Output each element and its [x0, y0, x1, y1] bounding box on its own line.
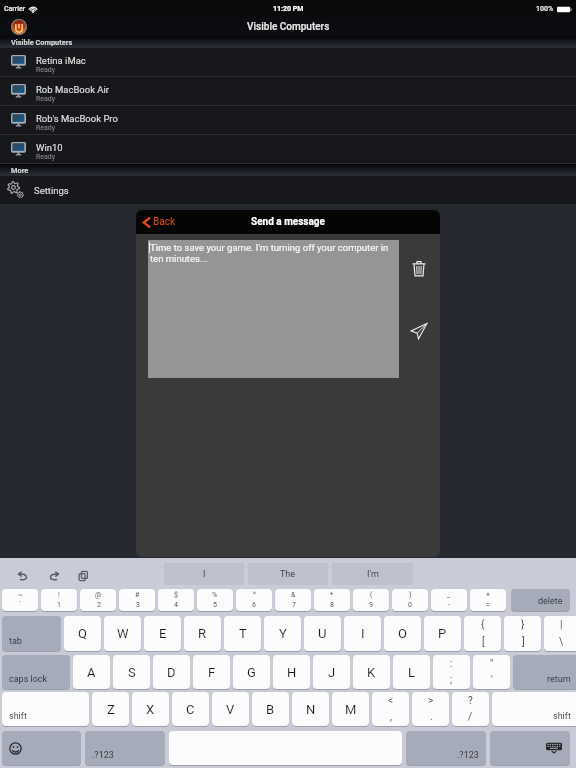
button[interactable]: |	[544, 616, 576, 651]
button[interactable]: F	[193, 655, 230, 689]
staticText: 6	[252, 601, 256, 609]
button[interactable]: {	[464, 616, 501, 651]
staticText: 2	[97, 601, 101, 609]
button[interactable]: "	[473, 655, 510, 689]
button[interactable]: X	[132, 692, 169, 726]
button[interactable]: +	[470, 589, 506, 611]
staticText: "	[490, 658, 494, 670]
button[interactable]: N	[292, 692, 329, 726]
button[interactable]: D	[153, 655, 190, 689]
button[interactable]: B	[252, 692, 289, 726]
button[interactable]: .?123	[406, 731, 486, 765]
staticText: Carrier	[4, 5, 26, 13]
button[interactable]: :	[433, 655, 470, 689]
button[interactable]: L	[393, 655, 430, 689]
button[interactable]: return	[513, 655, 576, 689]
button[interactable]: )	[392, 589, 428, 611]
button[interactable]: K	[353, 655, 390, 689]
staticText: .?123	[92, 750, 114, 761]
staticText: |	[560, 619, 563, 631]
staticText: /	[468, 711, 473, 723]
button[interactable]: Win10	[0, 135, 576, 163]
button[interactable]: Undo	[11, 565, 33, 587]
button[interactable]: ?	[452, 692, 489, 726]
button[interactable]: C	[172, 692, 209, 726]
button[interactable]: Send	[410, 322, 428, 340]
button[interactable]: _	[431, 589, 467, 611]
staticText: ]	[522, 636, 525, 648]
button[interactable]: %	[197, 589, 233, 611]
staticText: L	[408, 665, 416, 680]
button[interactable]: delete	[511, 589, 570, 611]
button[interactable]: #	[119, 589, 155, 611]
button[interactable]: U	[304, 616, 341, 651]
staticText: *	[330, 591, 334, 599]
button[interactable]: Time to save your game. I'm turning off …	[148, 240, 399, 378]
button[interactable]: Redo	[43, 565, 65, 587]
button[interactable]: @	[80, 589, 116, 611]
button[interactable]: Z	[92, 692, 129, 726]
button[interactable]: Power	[11, 19, 27, 35]
staticText: @	[95, 591, 102, 599]
staticText: I	[203, 569, 206, 580]
button[interactable]: W	[104, 616, 141, 651]
button[interactable]: V	[212, 692, 249, 726]
button[interactable]: }	[504, 616, 541, 651]
button[interactable]: ^	[236, 589, 272, 611]
button[interactable]: Settings	[0, 176, 576, 204]
staticText: 11:20 PM	[273, 5, 304, 13]
button[interactable]: Back	[143, 210, 175, 234]
button[interactable]: shift	[492, 692, 576, 726]
button[interactable]: J	[313, 655, 350, 689]
button[interactable]: I'm	[332, 563, 413, 585]
staticText: 3	[136, 601, 140, 609]
button[interactable]: P	[424, 616, 461, 651]
button[interactable]: tab	[2, 616, 61, 651]
button[interactable]	[490, 731, 570, 765]
staticText: ^	[253, 591, 256, 599]
button[interactable]: R	[184, 616, 221, 651]
button[interactable]: Retina iMac	[0, 48, 576, 76]
button[interactable]: Paste	[72, 565, 94, 587]
button[interactable]: M	[332, 692, 369, 726]
button[interactable]: S	[113, 655, 150, 689]
button[interactable]: T	[224, 616, 261, 651]
button[interactable]: $	[158, 589, 194, 611]
button[interactable]: The	[248, 563, 328, 585]
button[interactable]: ~	[2, 589, 38, 611]
button[interactable]: caps lock	[2, 655, 70, 689]
button[interactable]: *	[314, 589, 350, 611]
button[interactable]: (	[353, 589, 389, 611]
button[interactable]: E	[144, 616, 181, 651]
staticText: _	[447, 591, 451, 599]
button[interactable]: Rob MacBook Air	[0, 77, 576, 105]
button[interactable]: G	[233, 655, 270, 689]
staticText: !	[58, 591, 60, 599]
button[interactable]: .?123	[85, 731, 165, 765]
button[interactable]: shift	[2, 692, 89, 726]
button[interactable]: I	[164, 563, 244, 585]
button[interactable]: >	[412, 692, 449, 726]
staticText: 100%	[536, 5, 554, 13]
button[interactable]: Q	[64, 616, 101, 651]
staticText: M	[345, 702, 357, 717]
button[interactable]: A	[73, 655, 110, 689]
staticText: shift	[9, 711, 27, 722]
button[interactable]: H	[273, 655, 310, 689]
staticText: More	[11, 166, 29, 175]
button[interactable]	[2, 731, 81, 765]
staticText: ~	[18, 591, 23, 599]
staticText: 4	[174, 601, 178, 609]
staticText: Ready	[36, 124, 56, 132]
button[interactable]: Y	[264, 616, 301, 651]
staticText: Send a message	[251, 216, 325, 228]
button[interactable]: !	[41, 589, 77, 611]
button[interactable]: I	[344, 616, 381, 651]
button[interactable]: &	[275, 589, 311, 611]
button[interactable]: Delete	[411, 259, 427, 279]
button[interactable]: Rob's MacBook Pro	[0, 106, 576, 134]
staticText: G	[247, 665, 256, 680]
button[interactable]: <	[372, 692, 409, 726]
button[interactable]: O	[384, 616, 421, 651]
